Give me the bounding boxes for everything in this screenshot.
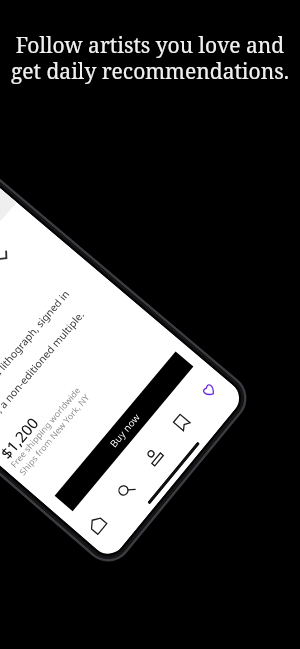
button[interactable]: Inbox [129,431,178,482]
staticText: Follow artists you love and get daily re… [0,31,300,85]
button[interactable]: Favorites [185,366,232,415]
staticText: Ships from New York, NY [17,392,91,477]
button[interactable]: Home [74,498,122,548]
staticText: Buy now [107,411,143,450]
button[interactable]: Buy now [55,351,193,511]
staticText: Free shipping worldwide [8,384,83,470]
button[interactable]: Search [101,464,150,516]
staticText: Hand-pulled lithograph, signed in [0,287,72,422]
staticText: pencil, a non-editioned multiple. [0,308,87,438]
staticText: $1,200 [0,413,43,463]
button[interactable]: Saves [157,397,206,448]
